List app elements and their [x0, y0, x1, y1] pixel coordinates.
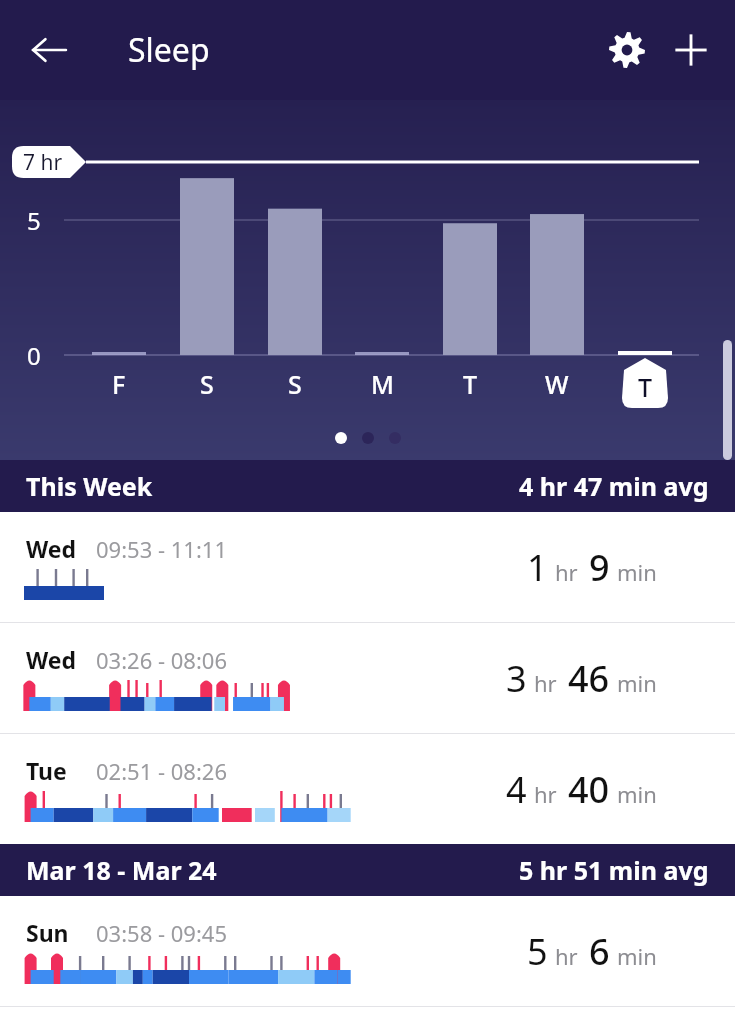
staticText: 4: [506, 765, 527, 814]
staticText: 02:51 - 08:26: [96, 756, 227, 786]
staticText: 4 hr 47 min avg: [519, 469, 709, 503]
staticText: Wed: [26, 644, 77, 675]
staticText: M: [371, 367, 394, 401]
staticText: hr: [555, 941, 578, 971]
staticText: S: [288, 367, 302, 401]
staticText: 3: [506, 654, 527, 703]
staticText: hr: [534, 668, 557, 698]
button[interactable]: Back: [16, 17, 82, 83]
button[interactable]: Settings: [595, 18, 659, 82]
button[interactable]: Wed: [0, 512, 735, 622]
staticText: 40: [568, 765, 610, 814]
button[interactable]: Mar 18 - Mar 24: [0, 844, 735, 896]
staticText: 5: [527, 927, 548, 976]
staticText: F: [112, 367, 126, 401]
staticText: Mar 18 - Mar 24: [26, 853, 217, 887]
staticText: 5 hr 51 min avg: [519, 853, 709, 887]
staticText: This Week: [26, 469, 153, 503]
button[interactable]: Tue: [0, 734, 735, 844]
staticText: S: [200, 367, 214, 401]
staticText: hr: [534, 779, 557, 809]
staticText: Sun: [26, 917, 69, 948]
staticText: 5: [27, 204, 41, 237]
staticText: T: [463, 367, 478, 401]
staticText: 46: [568, 654, 610, 703]
staticText: 09:53 - 11:11: [96, 534, 227, 564]
staticText: 03:58 - 09:45: [96, 918, 227, 948]
staticText: 1: [527, 543, 548, 592]
staticText: Tue: [26, 755, 67, 786]
button[interactable]: Add: [659, 18, 723, 82]
staticText: W: [545, 367, 569, 401]
staticText: min: [617, 941, 657, 971]
button[interactable]: Sun: [0, 896, 735, 1006]
staticText: min: [617, 557, 657, 587]
staticText: 9: [589, 543, 610, 592]
staticText: min: [617, 668, 657, 698]
staticText: 03:26 - 08:06: [96, 645, 227, 675]
staticText: 6: [589, 927, 610, 976]
staticText: 0: [27, 339, 41, 372]
staticText: min: [617, 779, 657, 809]
staticText: T: [638, 370, 653, 404]
button[interactable]: Wed: [0, 623, 735, 733]
staticText: Wed: [26, 533, 77, 564]
button[interactable]: This Week: [0, 460, 735, 512]
staticText: Sleep: [128, 28, 210, 72]
staticText: hr: [555, 557, 578, 587]
staticText: 7 hr: [23, 148, 63, 177]
